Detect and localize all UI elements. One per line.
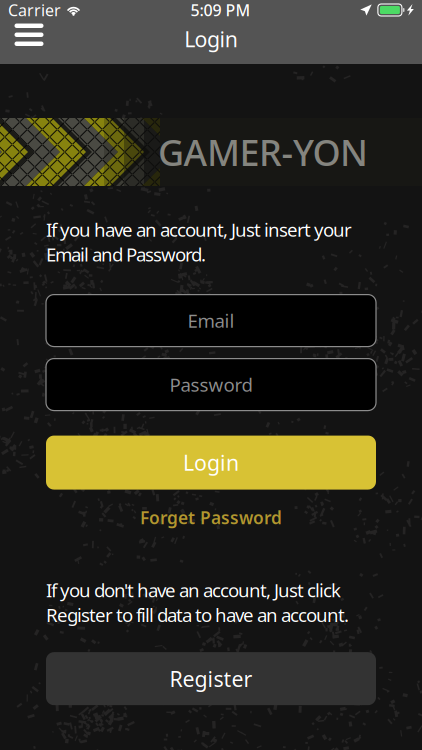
button[interactable]: Email	[46, 295, 376, 347]
staticText: Register	[169, 664, 252, 693]
button[interactable]: Register	[46, 652, 376, 705]
button[interactable]: Login	[46, 436, 376, 490]
staticText: Login	[183, 448, 239, 477]
staticText: Login	[184, 25, 238, 53]
staticText: Email and Password.	[46, 242, 206, 267]
staticText: Forget Password	[140, 506, 282, 529]
button[interactable]: Password	[46, 359, 376, 411]
staticText: 5:09 PM	[190, 0, 250, 21]
staticText: Password	[169, 372, 252, 397]
staticText: Carrier	[8, 0, 61, 21]
staticText: GAMER-YON	[158, 128, 368, 176]
staticText: Register to fill data to have an account…	[46, 602, 349, 627]
staticText: If you have an account, Just insert your	[46, 217, 352, 242]
staticText: Email	[187, 308, 234, 333]
button[interactable]: Forget Password	[46, 508, 376, 528]
button[interactable]: Menu	[7, 20, 51, 64]
staticText: If you don't have an account, Just click	[46, 578, 341, 602]
